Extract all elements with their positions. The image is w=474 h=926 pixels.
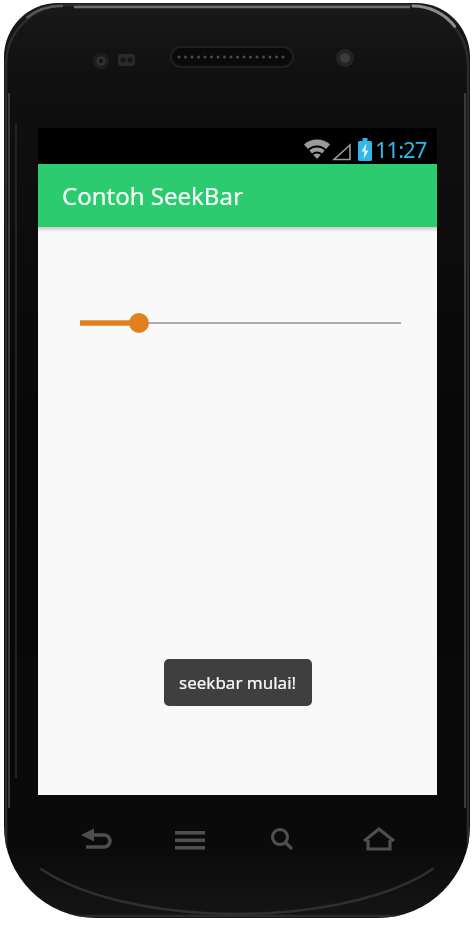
button[interactable]: Contoh SeekBar — [38, 164, 437, 227]
staticText: seekbar mulai! — [179, 671, 297, 694]
button[interactable] — [254, 812, 310, 868]
button[interactable] — [74, 303, 407, 343]
button[interactable] — [351, 812, 407, 868]
button[interactable] — [68, 812, 124, 868]
staticText: 11:27 — [375, 134, 427, 164]
button[interactable]: seekbar mulai! — [164, 659, 312, 706]
staticText: Contoh SeekBar — [62, 179, 243, 212]
button[interactable] — [162, 812, 218, 868]
